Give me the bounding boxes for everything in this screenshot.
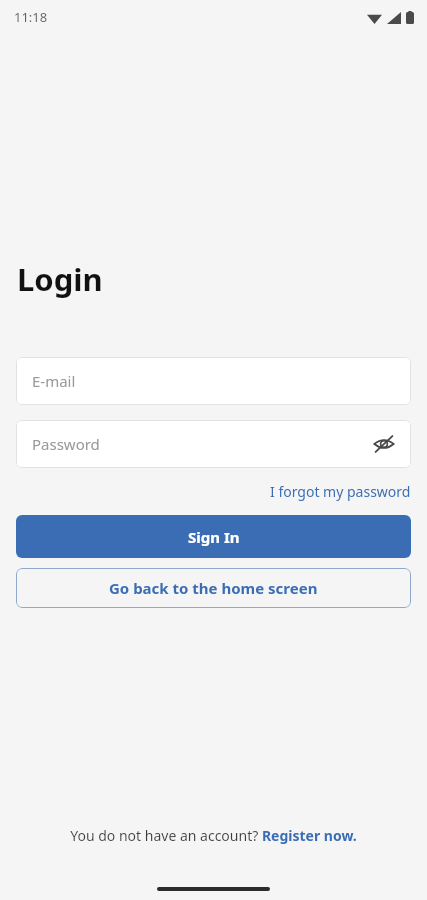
staticText: Login xyxy=(17,258,103,300)
staticText: You do not have an account? Register now… xyxy=(70,826,357,845)
button[interactable]: Sign In xyxy=(16,515,411,558)
staticText: 11:18 xyxy=(14,8,48,26)
staticText: Sign In xyxy=(188,527,240,547)
button[interactable]: Password xyxy=(16,420,411,468)
button[interactable]: You do not have an account? Register now… xyxy=(0,826,427,845)
staticText: I forgot my password xyxy=(270,482,411,501)
staticText: E-mail xyxy=(32,371,76,391)
button[interactable]: I forgot my password xyxy=(270,482,411,501)
button[interactable]: E-mail xyxy=(16,357,411,405)
button[interactable]: Go back to the home screen xyxy=(16,568,411,608)
staticText: Go back to the home screen xyxy=(109,578,318,598)
staticText: Password xyxy=(32,434,100,454)
button[interactable]: Show password xyxy=(365,425,403,463)
